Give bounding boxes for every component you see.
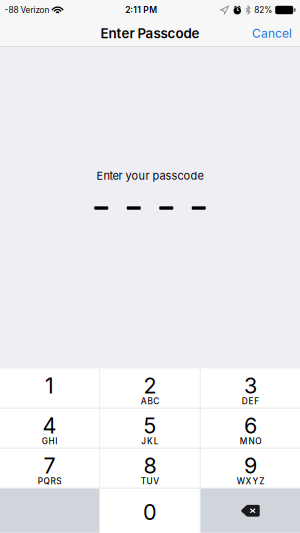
- staticText: 2:11 PM: [125, 5, 157, 15]
- staticText: 1: [45, 373, 54, 399]
- staticText: 9: [244, 453, 257, 479]
- staticText: GHI: [42, 436, 57, 446]
- staticText: 3: [244, 373, 257, 399]
- staticText: 4: [42, 413, 56, 439]
- staticText: 7: [43, 453, 55, 479]
- staticText: Cancel: [252, 26, 292, 41]
- staticText: 8: [143, 453, 156, 479]
- staticText: ABC: [141, 396, 159, 406]
- button[interactable]: 9: [201, 449, 300, 488]
- button[interactable]: 8: [100, 449, 200, 488]
- staticText: WXYZ: [237, 476, 264, 486]
- staticText: Enter Passcode: [100, 25, 199, 41]
- staticText: -88 Verizon: [4, 5, 49, 15]
- button[interactable]: 7: [0, 449, 99, 488]
- button[interactable]: 1: [0, 369, 99, 408]
- staticText: 2: [143, 373, 156, 399]
- staticText: 5: [143, 413, 156, 439]
- staticText: DEF: [242, 396, 259, 406]
- button[interactable]: Cancel: [246, 20, 300, 47]
- staticText: 82%: [254, 5, 272, 15]
- staticText: PQRS: [38, 476, 61, 486]
- button[interactable]: 4: [0, 409, 99, 448]
- staticText: JKL: [141, 436, 159, 446]
- button[interactable]: 0: [100, 489, 200, 533]
- staticText: 6: [244, 413, 257, 439]
- staticText: 0: [143, 499, 157, 525]
- staticText: TUV: [141, 476, 159, 486]
- button[interactable]: 5: [100, 409, 200, 448]
- button[interactable]: 6: [201, 409, 300, 448]
- staticText: MNO: [240, 436, 261, 446]
- button[interactable]: 3: [201, 369, 300, 408]
- staticText: Enter your passcode: [96, 169, 203, 182]
- button[interactable]: 2: [100, 369, 200, 408]
- button[interactable]: Delete: [201, 489, 300, 533]
